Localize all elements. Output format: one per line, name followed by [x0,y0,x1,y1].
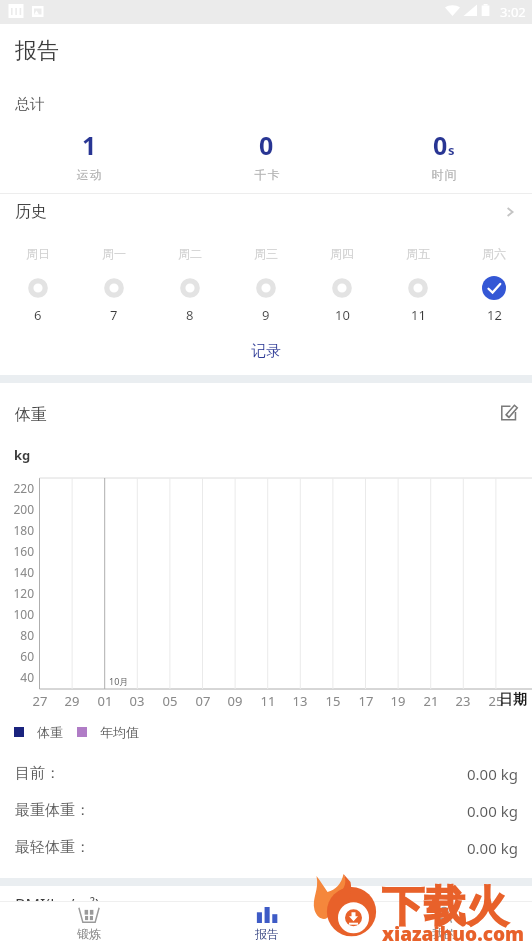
staticText: 最重体重： [15,801,90,820]
staticText: 记录 [251,342,281,361]
staticText: 0 [259,128,274,162]
staticText: 19 [384,692,412,710]
staticText: 200 [0,501,34,517]
staticText: 0.00 kg [467,838,518,858]
staticText: s [448,141,455,159]
staticText: 01 [91,692,119,710]
staticText: 25 [482,692,510,710]
staticText: 周日 [26,246,50,261]
staticText: 80 [0,627,34,643]
staticText: 周四 [330,246,354,261]
staticText: 11 [254,692,282,710]
staticText: 10 [335,306,350,324]
staticText: 27 [26,692,54,710]
staticText: 40 [0,669,34,685]
button[interactable]: 周二 [152,246,228,324]
staticText: 周五 [406,246,430,261]
button[interactable]: 周日 [0,246,76,324]
button[interactable]: 记录 [0,334,532,368]
staticText: 6 [34,306,42,324]
staticText: 0 [433,128,448,162]
staticText: 0.00 kg [467,764,518,784]
staticText: 周三 [254,246,278,261]
button[interactable]: 周三 [228,246,304,324]
staticText: kg [14,446,31,464]
staticText: 220 [0,480,34,496]
staticText: 目前： [15,764,60,783]
staticText: 0.00 kg [467,801,518,821]
staticText: 我的 [432,926,456,941]
staticText: 周一 [102,246,126,261]
button[interactable]: Edit weight [493,397,525,429]
staticText: 历史 [15,202,47,222]
staticText: 体重 [37,724,63,740]
staticText: 运动 [76,167,102,182]
staticText: 周二 [178,246,202,261]
staticText: 8 [186,306,194,324]
staticText: 10月 [109,675,129,687]
staticText: 最轻体重： [15,838,90,857]
staticText: 年均值 [100,724,139,740]
staticText: 体重 [15,405,47,425]
button[interactable]: 周一 [76,246,152,324]
staticText: 1 [82,128,97,162]
button[interactable]: 报告 [178,902,355,946]
staticText: 05 [156,692,184,710]
staticText: 报告 [15,37,59,65]
staticText: 03 [123,692,151,710]
staticText: 周六 [482,246,506,261]
button[interactable]: 历史 [0,194,532,230]
staticText: 140 [0,564,34,580]
staticText: 下载火 [382,881,508,934]
button[interactable]: 周六 [456,246,532,324]
staticText: 报告 [255,926,279,941]
staticText: 12 [487,306,502,324]
staticText: 日期 [499,691,527,709]
staticText: 3:02 [500,3,526,21]
staticText: 锻炼 [77,926,101,941]
staticText: 100 [0,606,34,622]
staticText: 09 [221,692,249,710]
staticText: 60 [0,648,34,664]
staticText: 21 [417,692,445,710]
staticText: 11 [411,306,426,324]
staticText: 时间 [431,167,457,182]
staticText: 15 [319,692,347,710]
staticText: 17 [352,692,380,710]
staticText: xiazaihuo.com [382,921,525,946]
staticText: 千卡 [254,167,280,182]
staticText: 13 [286,692,314,710]
staticText: BMI(kg/m²) [15,894,100,916]
staticText: 120 [0,585,34,601]
staticText: 160 [0,543,34,559]
staticText: 9 [262,306,270,324]
staticText: 07 [189,692,217,710]
staticText: 总计 [15,95,45,114]
button[interactable]: 锻炼 [0,902,178,946]
staticText: 23 [449,692,477,710]
staticText: 180 [0,522,34,538]
button[interactable]: 周五 [380,246,456,324]
staticText: 7 [110,306,118,324]
button[interactable]: 周四 [304,246,380,324]
button[interactable]: 我的 [355,902,532,946]
staticText: 29 [58,692,86,710]
